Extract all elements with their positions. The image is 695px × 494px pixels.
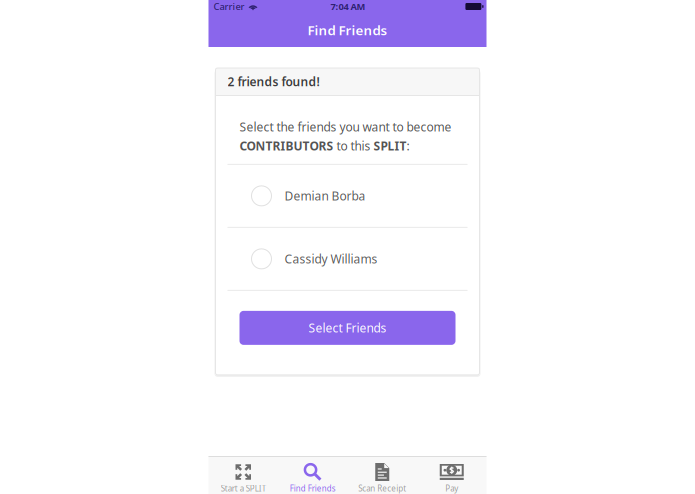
staticText: Find Friends: [307, 21, 387, 39]
button[interactable]: Select Friends: [239, 311, 455, 345]
staticText: 7:04 AM: [330, 0, 365, 13]
button[interactable]: Cassidy Williams: [215, 228, 479, 290]
button[interactable]: Find Friends: [208, 13, 486, 47]
staticText: Cassidy Williams: [284, 251, 377, 267]
staticText: Find Friends: [290, 483, 336, 494]
staticText: Start a SPLIT: [221, 483, 266, 494]
staticText: Select Friends: [308, 320, 386, 336]
staticText: CONTRIBUTORS: [239, 138, 333, 154]
button[interactable]: Scan Receipt: [347, 457, 417, 494]
staticText: Demian Borba: [284, 188, 365, 204]
staticText: Select the friends you want to become: [239, 119, 451, 135]
staticText: 2 friends found!: [227, 73, 319, 89]
button[interactable]: Demian Borba: [215, 165, 479, 227]
button[interactable]: Pay: [417, 457, 486, 494]
button[interactable]: Start a SPLIT: [208, 457, 278, 494]
button[interactable]: Find Friends: [278, 457, 347, 494]
staticText: Scan Receipt: [358, 483, 406, 494]
staticText: SPLIT: [373, 138, 406, 154]
staticText: Pay: [445, 483, 458, 494]
staticText: to this: [333, 138, 373, 154]
staticText: :: [406, 138, 409, 154]
staticText: Carrier: [213, 0, 244, 13]
